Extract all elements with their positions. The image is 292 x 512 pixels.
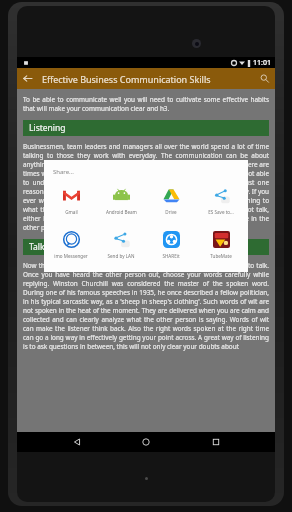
- staticText: 11:01: [253, 58, 271, 68]
- button[interactable]: Search: [254, 68, 275, 89]
- button[interactable]: Back: [67, 432, 87, 452]
- button: Share...: [44, 160, 248, 272]
- button[interactable]: ES Save to...: [196, 182, 246, 217]
- staticText: imo Messenger: [54, 253, 88, 259]
- staticText: Share...: [53, 168, 74, 176]
- button[interactable]: SHAREit: [146, 226, 196, 261]
- button[interactable]: Home: [136, 432, 156, 452]
- staticText: TubeMate: [210, 253, 232, 259]
- button[interactable]: Android Beam: [96, 182, 146, 217]
- staticText: SHAREit: [162, 253, 180, 259]
- button[interactable]: Recent apps: [206, 432, 226, 452]
- button[interactable]: TubeMate: [196, 226, 246, 261]
- staticText: Listening: [29, 122, 66, 134]
- staticText: Businessmen, team leaders and managers a…: [23, 142, 269, 232]
- staticText: Android Beam: [106, 209, 137, 215]
- staticText: Talking: [29, 241, 58, 253]
- staticText: Drive: [165, 209, 177, 215]
- button[interactable]: Send by LAN: [96, 226, 146, 261]
- staticText: Gmail: [65, 209, 78, 215]
- button[interactable]: imo Messenger: [46, 226, 96, 261]
- staticText: Send by LAN: [107, 253, 135, 259]
- staticText: ES Save to...: [208, 209, 234, 215]
- button[interactable]: Back: [17, 68, 38, 89]
- button[interactable]: Drive: [146, 182, 196, 217]
- staticText: To be able to communicate well you will …: [23, 95, 269, 113]
- staticText: Now the second most important thing abou…: [23, 261, 269, 351]
- button[interactable]: Gmail: [46, 182, 96, 217]
- staticText: Effective Business Communication Skills: [42, 73, 254, 85]
